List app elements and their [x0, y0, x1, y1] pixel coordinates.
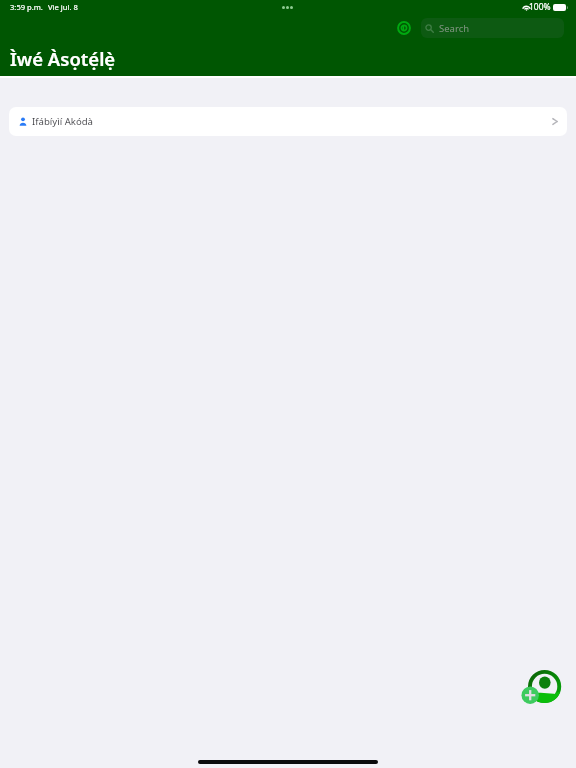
- staticText: Ifábíyìí Akódà: [32, 115, 93, 128]
- button[interactable]: Add contact: [512, 665, 564, 717]
- staticText: 3:59 p.m.: [10, 2, 43, 12]
- button[interactable]: Search: [421, 18, 564, 38]
- button[interactable]: Ifábíyìí Akódà: [9, 107, 567, 136]
- staticText: Vie jul. 8: [48, 2, 78, 12]
- button[interactable]: Scan: [396, 20, 412, 36]
- staticText: 100%: [529, 1, 551, 13]
- staticText: Search: [439, 22, 470, 35]
- staticText: Ìwé Àsọtẹ́lẹ̀: [10, 46, 116, 71]
